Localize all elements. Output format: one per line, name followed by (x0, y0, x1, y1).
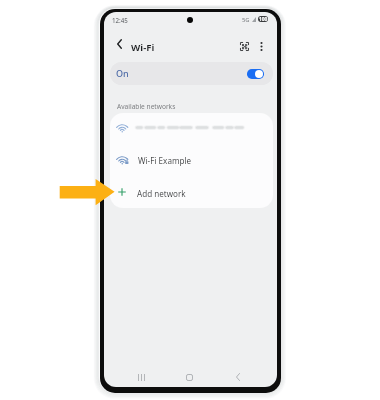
button[interactable]: Back (231, 370, 245, 384)
button[interactable]: Recents (134, 370, 148, 384)
staticText: 100 (259, 16, 268, 22)
staticText: 5G (242, 16, 250, 24)
button[interactable]: Add network (110, 177, 273, 208)
button[interactable]: On (110, 62, 273, 85)
button[interactable]: Home (182, 370, 196, 384)
button[interactable]: More options (255, 40, 267, 52)
button[interactable]: Scan QR code (237, 39, 252, 54)
staticText: Available networks (117, 102, 176, 111)
button[interactable] (110, 113, 273, 145)
staticText: 12:45 (112, 16, 128, 24)
staticText: On (116, 67, 129, 79)
staticText: Wi-Fi (131, 41, 155, 54)
staticText: Wi-Fi Example (138, 155, 192, 166)
staticText: Add network (137, 188, 186, 199)
button[interactable]: Back (112, 37, 126, 51)
button[interactable]: Wi-Fi Example (110, 145, 273, 177)
